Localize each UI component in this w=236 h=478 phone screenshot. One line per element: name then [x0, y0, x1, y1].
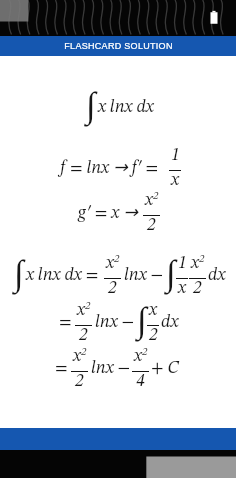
staticText: f = lnx → f′ =: [60, 157, 159, 177]
staticText: lnx −: [124, 267, 164, 285]
staticText: 2: [108, 280, 117, 298]
staticText: 2: [79, 327, 88, 345]
staticText: x: [134, 348, 142, 366]
staticText: x lnx dx =: [26, 267, 99, 285]
staticText: 2: [114, 254, 120, 265]
staticText: 2: [153, 191, 159, 202]
staticText: 1: [178, 255, 187, 273]
staticText: x: [77, 302, 85, 320]
staticText: x lnx dx: [98, 99, 154, 117]
staticText: g′ = x →: [78, 202, 138, 222]
staticText: 2: [149, 327, 158, 345]
staticText: lnx −: [95, 314, 135, 332]
staticText: x: [178, 280, 186, 298]
staticText: dx: [208, 267, 226, 285]
staticText: 2: [75, 373, 84, 391]
staticText: x: [149, 302, 157, 320]
staticText: x: [171, 172, 179, 190]
staticText: ∫: [137, 300, 147, 340]
staticText: lnx −: [91, 360, 131, 378]
staticText: 2: [142, 347, 148, 358]
staticText: x: [106, 255, 114, 273]
staticText: dx: [161, 314, 179, 332]
staticText: x: [191, 255, 199, 273]
staticText: + C: [151, 360, 180, 378]
staticText: =: [55, 360, 68, 378]
staticText: 2: [199, 254, 205, 265]
staticText: 2: [147, 217, 156, 235]
staticText: ∫: [166, 253, 176, 293]
button[interactable]: FLASHCARD SOLUTION: [0, 36, 236, 56]
staticText: x: [73, 348, 81, 366]
staticText: 1: [171, 147, 180, 165]
other: Battery: [206, 10, 222, 26]
staticText: 2: [193, 280, 202, 298]
staticText: ∫: [14, 253, 24, 293]
staticText: x: [145, 192, 153, 210]
staticText: 4: [136, 373, 145, 391]
staticText: =: [59, 314, 72, 332]
staticText: 2: [85, 301, 91, 312]
staticText: 2: [81, 347, 87, 358]
staticText: ∫: [86, 85, 96, 125]
staticText: FLASHCARD SOLUTION: [64, 41, 173, 51]
